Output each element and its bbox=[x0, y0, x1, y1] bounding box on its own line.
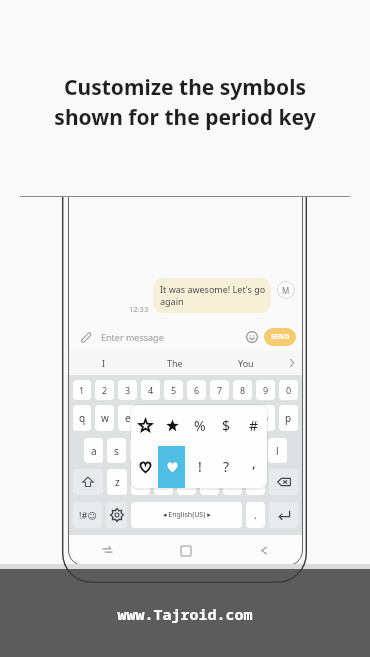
button[interactable]: SEND bbox=[264, 328, 296, 346]
button[interactable]: ! bbox=[186, 445, 213, 488]
staticText: t bbox=[172, 411, 176, 425]
button[interactable]: a bbox=[84, 438, 103, 463]
staticText: c bbox=[161, 475, 166, 489]
button[interactable]: You bbox=[210, 357, 281, 369]
staticText: 2 bbox=[102, 384, 108, 396]
button[interactable]: . bbox=[246, 502, 265, 528]
button[interactable]: Enter bbox=[269, 502, 298, 528]
staticText: n bbox=[229, 475, 236, 489]
button[interactable]: l bbox=[268, 438, 287, 463]
staticText: m bbox=[251, 475, 261, 489]
staticText: 4 bbox=[148, 384, 154, 396]
button[interactable]: s bbox=[107, 438, 126, 463]
staticText: r bbox=[148, 411, 153, 425]
button[interactable]: n bbox=[223, 469, 242, 495]
button[interactable]: u bbox=[210, 405, 229, 431]
button[interactable]: I bbox=[68, 357, 139, 369]
button[interactable]: Back bbox=[225, 545, 303, 556]
button[interactable]: 3 bbox=[118, 380, 137, 400]
staticText: ◂ English(US) ▸ bbox=[163, 510, 211, 520]
button[interactable]: m bbox=[246, 469, 265, 495]
staticText: ? bbox=[223, 457, 230, 476]
button[interactable]: q bbox=[73, 405, 91, 431]
staticText: www.Tajroid.com bbox=[0, 604, 370, 624]
button[interactable]: ? bbox=[213, 445, 240, 488]
staticText: I bbox=[102, 357, 106, 369]
button[interactable]: , bbox=[240, 445, 267, 488]
button[interactable]: Emoji bbox=[240, 325, 264, 349]
button[interactable]: !#☺ bbox=[73, 502, 102, 528]
staticText: You bbox=[238, 357, 254, 369]
button[interactable]: It was awesome! Let's go again bbox=[153, 278, 271, 313]
staticText: s bbox=[114, 444, 119, 458]
staticText: . bbox=[254, 508, 257, 522]
button[interactable]: p bbox=[279, 405, 298, 431]
staticText: ! bbox=[198, 457, 202, 476]
staticText: !#☺ bbox=[79, 509, 97, 521]
button[interactable]: j bbox=[222, 438, 241, 463]
staticText: Enter message bbox=[101, 331, 164, 343]
staticText: 12:33 bbox=[129, 304, 149, 314]
button[interactable] bbox=[131, 405, 159, 445]
staticText: p bbox=[285, 411, 292, 425]
button[interactable]: h bbox=[199, 438, 218, 463]
staticText: z bbox=[115, 475, 120, 489]
button[interactable]: Recents bbox=[68, 545, 147, 556]
button[interactable]: Shift bbox=[73, 469, 103, 495]
button[interactable]: b bbox=[200, 469, 219, 495]
staticText: a bbox=[91, 444, 97, 458]
staticText: 9 bbox=[263, 384, 269, 396]
button[interactable]: 7 bbox=[210, 380, 229, 400]
button[interactable]: o bbox=[256, 405, 275, 431]
button[interactable]: e bbox=[118, 405, 137, 431]
button[interactable]: # bbox=[240, 405, 267, 445]
button[interactable]: t bbox=[164, 405, 183, 431]
button[interactable]: 4 bbox=[141, 380, 160, 400]
staticText: $ bbox=[222, 416, 231, 435]
button[interactable]: More suggestions bbox=[281, 359, 303, 367]
button[interactable]: Home bbox=[147, 546, 225, 556]
button[interactable]: z bbox=[107, 469, 127, 495]
button[interactable]: d bbox=[130, 438, 149, 463]
staticText: f bbox=[161, 444, 165, 458]
staticText: 7 bbox=[217, 384, 223, 396]
button[interactable]: 0 bbox=[279, 380, 298, 400]
button[interactable] bbox=[159, 405, 186, 445]
button[interactable]: ◂ English(US) ▸ bbox=[131, 502, 242, 528]
staticText: b bbox=[206, 475, 213, 489]
button[interactable]: i bbox=[233, 405, 252, 431]
button[interactable]: Backspace bbox=[269, 469, 298, 495]
staticText: # bbox=[249, 416, 259, 435]
staticText: % bbox=[194, 416, 206, 435]
button[interactable]: 8 bbox=[233, 380, 252, 400]
button[interactable]: The bbox=[139, 357, 210, 369]
staticText: 6 bbox=[194, 384, 200, 396]
button[interactable]: 2 bbox=[95, 380, 114, 400]
button[interactable]: v bbox=[177, 469, 196, 495]
button[interactable] bbox=[159, 445, 186, 488]
button[interactable]: g bbox=[176, 438, 195, 463]
button[interactable]: f bbox=[153, 438, 172, 463]
button[interactable]: r bbox=[141, 405, 160, 431]
staticText: 1 bbox=[79, 384, 85, 396]
button[interactable]: $ bbox=[213, 405, 240, 445]
staticText: l bbox=[276, 444, 279, 458]
button[interactable]: Settings bbox=[106, 502, 127, 528]
button[interactable]: c bbox=[154, 469, 173, 495]
button[interactable]: 9 bbox=[256, 380, 275, 400]
staticText: It was awesome! Let's go again bbox=[160, 283, 266, 308]
button[interactable]: M bbox=[277, 281, 295, 299]
button[interactable]: 5 bbox=[164, 380, 183, 400]
button[interactable]: x bbox=[131, 469, 150, 495]
button[interactable]: 1 bbox=[73, 380, 91, 400]
button[interactable]: 6 bbox=[187, 380, 206, 400]
staticText: 5 bbox=[171, 384, 177, 396]
button[interactable]: w bbox=[95, 405, 114, 431]
button[interactable]: % bbox=[186, 405, 213, 445]
button[interactable] bbox=[131, 445, 159, 488]
button[interactable]: y bbox=[187, 405, 206, 431]
button[interactable]: Attach bbox=[68, 323, 101, 350]
